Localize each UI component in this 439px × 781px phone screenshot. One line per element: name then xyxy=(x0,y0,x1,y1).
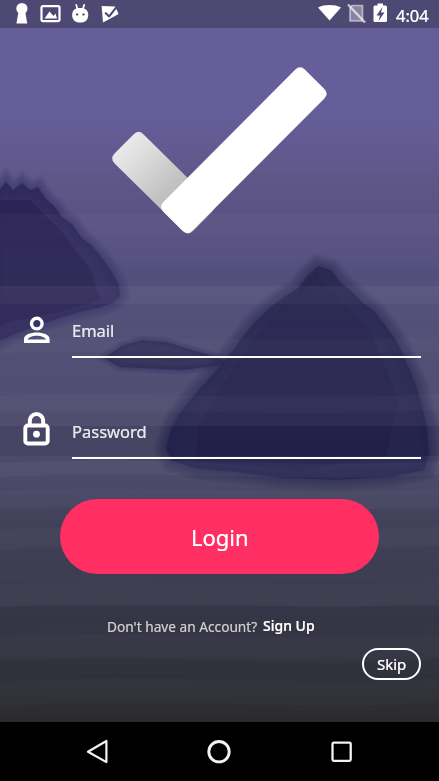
staticText: Password xyxy=(72,420,147,442)
button[interactable]: Email xyxy=(24,315,52,343)
staticText: Login xyxy=(191,522,249,552)
button[interactable]: Recents xyxy=(322,732,362,772)
button[interactable]: Don't have an Account? xyxy=(107,617,258,636)
staticText: Sign Up xyxy=(263,616,315,635)
staticText: Skip xyxy=(377,654,407,674)
button[interactable]: Back xyxy=(78,732,118,772)
button[interactable]: Home xyxy=(199,732,239,772)
button[interactable]: Password xyxy=(24,412,52,440)
staticText: Email xyxy=(72,319,115,341)
staticText: Don't have an Account? xyxy=(107,617,258,636)
button[interactable]: Sign Up xyxy=(263,616,315,635)
button[interactable]: Skip xyxy=(362,648,421,680)
button[interactable]: Login xyxy=(60,499,379,574)
staticText: 4:04 xyxy=(396,4,429,26)
